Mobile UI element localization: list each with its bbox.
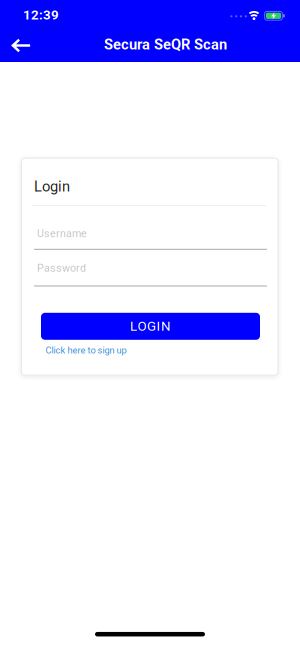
button[interactable]: Username xyxy=(34,227,267,250)
button[interactable]: Password xyxy=(34,261,267,286)
button[interactable]: LOGIN xyxy=(41,313,260,340)
button[interactable]: Click here to sign up xyxy=(45,345,126,356)
staticText: Login xyxy=(34,178,70,195)
staticText: 12:39 xyxy=(23,7,59,23)
staticText: LOGIN xyxy=(130,319,171,334)
staticText: Password xyxy=(37,262,86,274)
button[interactable]: Back xyxy=(8,32,34,58)
staticText: Click here to sign up xyxy=(45,345,126,356)
staticText: Secura SeQR Scan xyxy=(104,36,227,53)
staticText: Username xyxy=(37,227,87,240)
